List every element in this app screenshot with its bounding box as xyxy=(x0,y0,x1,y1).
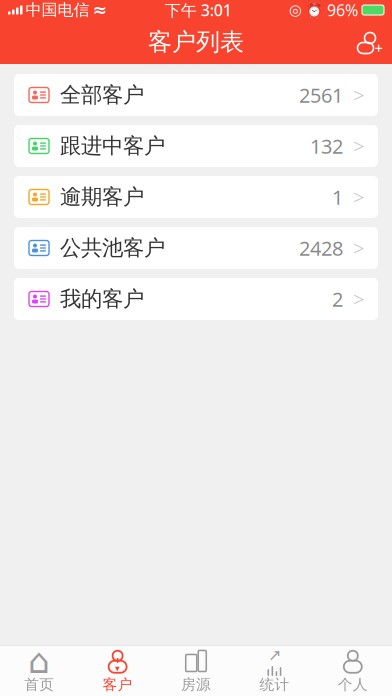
button[interactable]: 全部客户 xyxy=(14,74,378,116)
staticText: 公共池客户 xyxy=(60,235,165,261)
staticText: 1 xyxy=(332,184,343,210)
staticText: 房源 xyxy=(181,675,211,693)
button[interactable]: ⌂ xyxy=(0,645,78,696)
staticText: ▾ xyxy=(115,663,120,673)
staticText: 客户 xyxy=(103,675,133,693)
button[interactable]: 我的客户 xyxy=(14,278,378,320)
button[interactable]: 逾期客户 xyxy=(14,176,378,218)
staticText: 中国电信 xyxy=(25,0,89,20)
staticText: 2428 xyxy=(299,235,343,261)
staticText: ↗ xyxy=(268,646,281,664)
staticText: > xyxy=(353,133,364,159)
button[interactable]: 跟进中客户 xyxy=(14,125,378,167)
button[interactable]: 添加客户 xyxy=(348,20,392,64)
staticText: 132 xyxy=(310,133,343,159)
button[interactable]: 个人 xyxy=(314,645,392,696)
staticText: 96% xyxy=(327,0,358,21)
staticText: 2561 xyxy=(299,82,343,108)
button[interactable]: 房源 xyxy=(157,645,235,696)
staticText: 逾期客户 xyxy=(60,184,144,210)
staticText: 个人 xyxy=(338,675,368,693)
staticText: 统计 xyxy=(259,675,289,693)
staticText: ≈ xyxy=(92,0,107,20)
button[interactable]: ▾ xyxy=(78,645,157,696)
staticText: > xyxy=(353,184,364,210)
staticText: > xyxy=(353,286,364,312)
staticText: 全部客户 xyxy=(60,82,144,108)
staticText: ⏰ xyxy=(306,2,323,18)
staticText: 客户列表 xyxy=(148,27,244,57)
staticText: ◎ xyxy=(289,2,302,18)
button[interactable]: ↗ xyxy=(235,645,314,696)
staticText: 下午 3:01 xyxy=(165,0,232,21)
staticText: > xyxy=(353,82,364,108)
button[interactable]: 公共池客户 xyxy=(14,227,378,269)
staticText: > xyxy=(353,235,364,261)
staticText: 首页 xyxy=(24,675,54,693)
staticText: ⌂ xyxy=(28,641,50,681)
staticText: + xyxy=(374,38,382,58)
staticText: 2 xyxy=(332,286,343,312)
staticText: 跟进中客户 xyxy=(60,133,165,159)
staticText: 我的客户 xyxy=(60,286,144,312)
